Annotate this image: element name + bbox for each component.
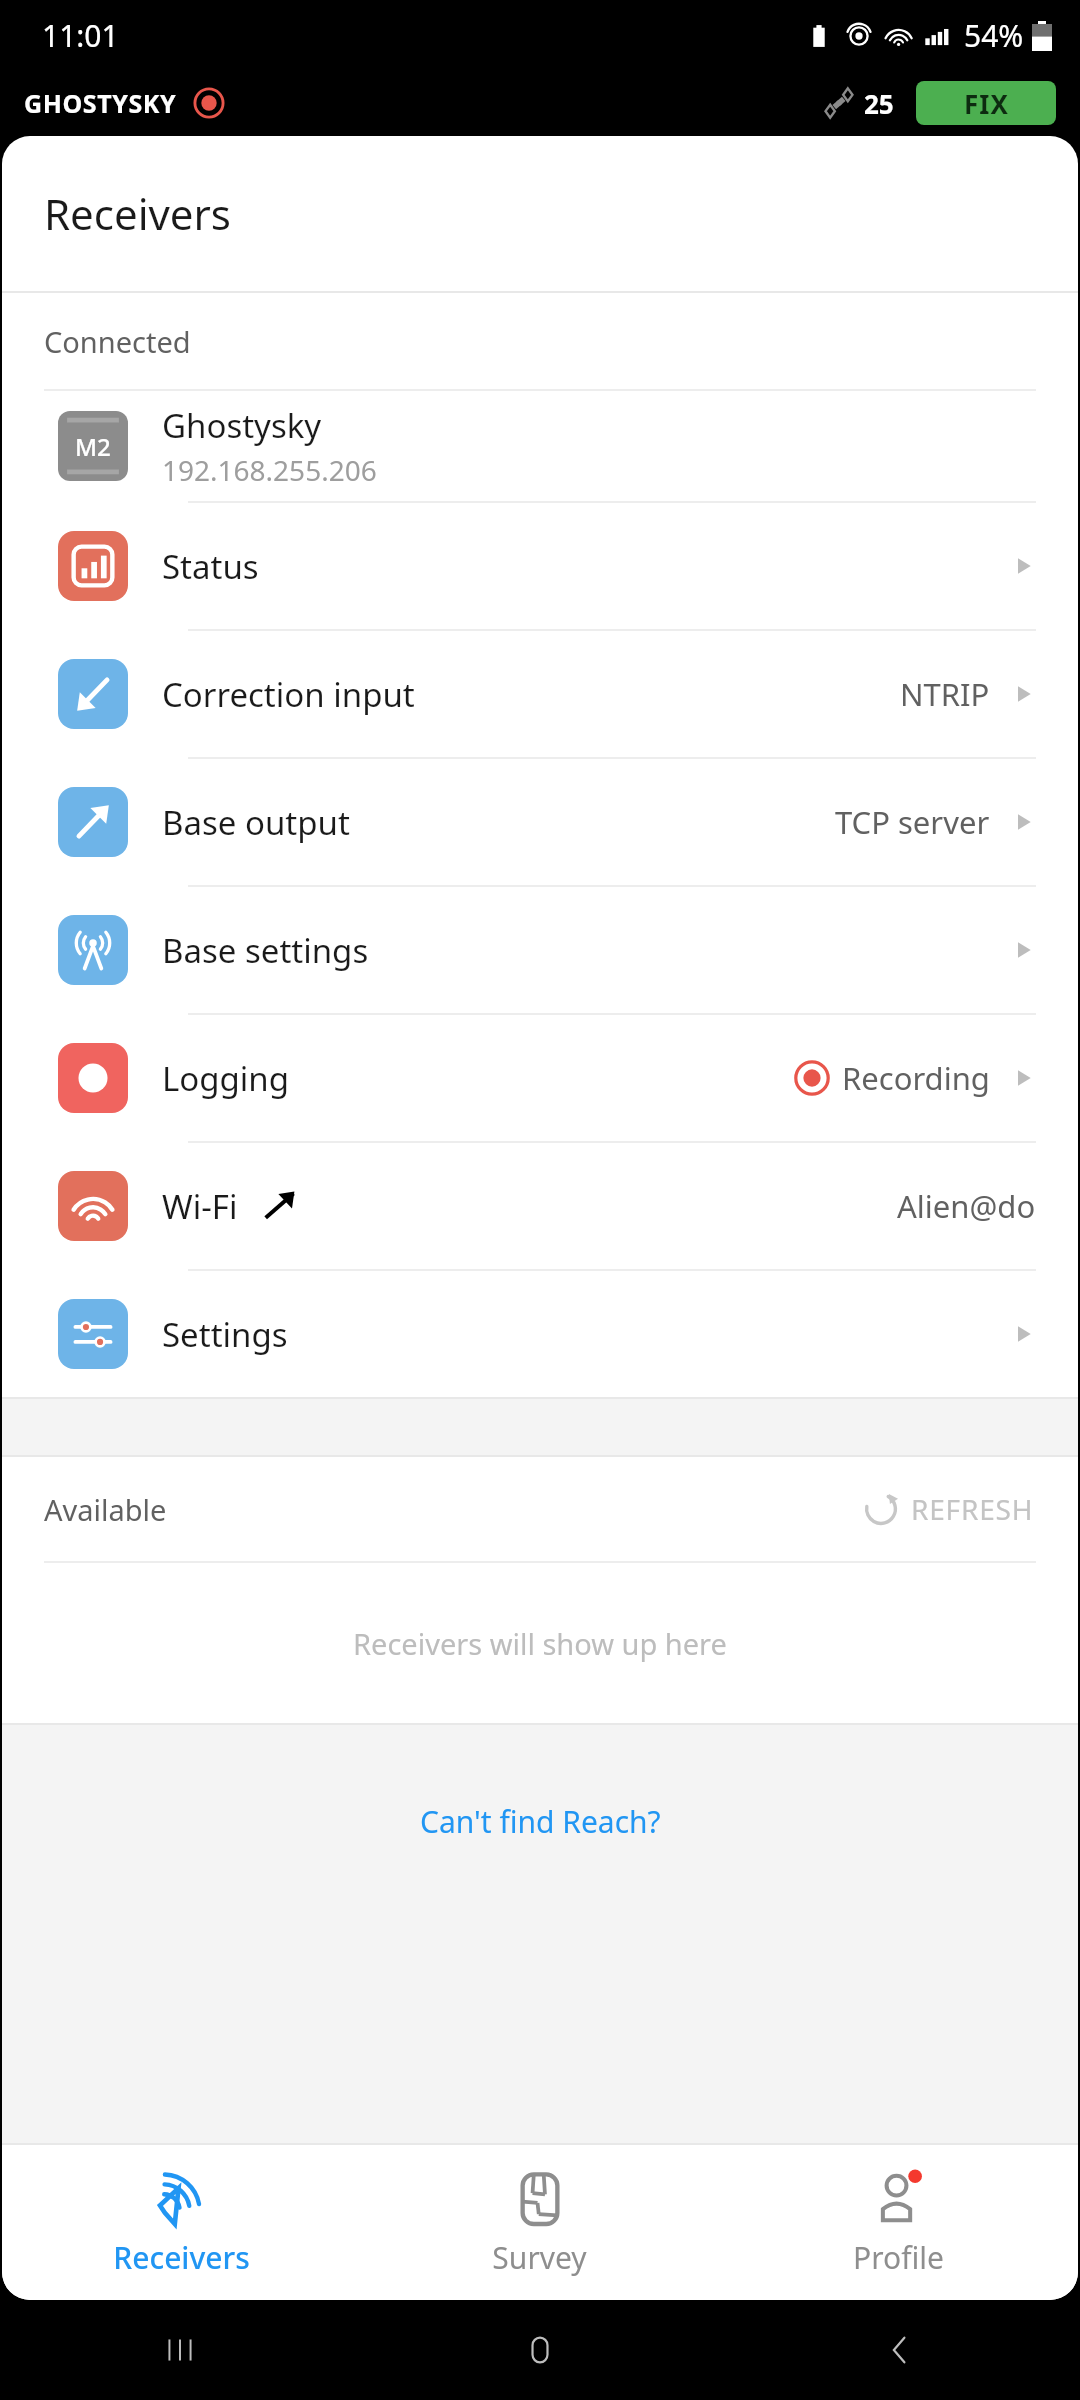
button[interactable]: Home [360, 2300, 720, 2400]
button[interactable]: M2 [2, 391, 1078, 501]
staticText: Connected [44, 322, 191, 361]
staticText: Status [162, 544, 259, 589]
staticText: Base output [162, 800, 350, 845]
staticText: Receivers will show up here [353, 1624, 727, 1663]
staticText: Can't find Reach? [420, 1801, 661, 1842]
button[interactable]: Base settings [2, 887, 1078, 1013]
button[interactable]: Receivers [2, 2155, 360, 2290]
button[interactable]: Can't find Reach? [408, 1795, 673, 1848]
button[interactable]: Correction input [2, 631, 1078, 757]
staticText: Survey [492, 2237, 587, 2278]
staticText: Receivers [44, 185, 231, 242]
staticText: GHOSTYSKY [24, 86, 177, 120]
button[interactable]: Survey [360, 2155, 719, 2290]
button[interactable]: Recent apps [0, 2300, 360, 2400]
staticText: Recording [842, 1057, 990, 1099]
staticText: Logging [162, 1056, 290, 1101]
button[interactable]: Back [720, 2300, 1080, 2400]
staticText: TCP server [835, 801, 990, 843]
staticText: NTRIP [900, 673, 990, 715]
staticText: 192.168.255.206 [162, 451, 377, 489]
button[interactable]: Profile [719, 2155, 1078, 2290]
button[interactable]: FIX [916, 81, 1056, 125]
button[interactable]: Settings [2, 1271, 1078, 1397]
staticText: M2 [75, 430, 111, 463]
staticText: FIX [964, 86, 1009, 121]
button[interactable]: Status [2, 503, 1078, 629]
staticText: 25 [864, 86, 894, 121]
staticText: Settings [162, 1312, 288, 1357]
button[interactable]: REFRESH [855, 1483, 1040, 1535]
other: Satellites [822, 86, 856, 120]
button[interactable]: Base output [2, 759, 1078, 885]
staticText: Correction input [162, 672, 415, 717]
staticText: REFRESH [911, 1490, 1034, 1528]
staticText: Wi-Fi [162, 1184, 238, 1229]
button[interactable]: Logging [2, 1015, 1078, 1141]
staticText: Available [44, 1490, 167, 1529]
staticText: Base settings [162, 928, 369, 973]
staticText: 11:01 [42, 15, 119, 56]
staticText: Receivers [113, 2237, 250, 2278]
staticText: Ghostysky [162, 403, 322, 448]
button[interactable]: Wi-Fi [2, 1143, 1078, 1269]
staticText: Alien@do [897, 1185, 1036, 1227]
staticText: 54% [964, 15, 1024, 56]
staticText: Profile [853, 2237, 944, 2278]
